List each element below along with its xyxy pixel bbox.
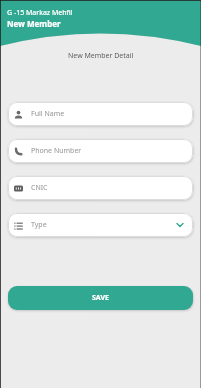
staticText: SAVE bbox=[92, 293, 109, 303]
button[interactable]: Type bbox=[8, 213, 193, 237]
staticText: CNIC bbox=[31, 183, 48, 193]
staticText: G -15 Markaz Mehfil bbox=[7, 8, 73, 18]
staticText: New Member Detail bbox=[68, 51, 134, 61]
staticText: New Member bbox=[7, 18, 61, 29]
staticText: Type bbox=[31, 220, 47, 230]
button[interactable]: Full Name bbox=[8, 102, 193, 126]
button[interactable]: SAVE bbox=[8, 286, 193, 310]
button[interactable]: Phone Number bbox=[8, 139, 193, 163]
staticText: Phone Number bbox=[31, 146, 82, 156]
staticText: Full Name bbox=[31, 109, 65, 119]
button[interactable]: CNIC bbox=[8, 176, 193, 200]
